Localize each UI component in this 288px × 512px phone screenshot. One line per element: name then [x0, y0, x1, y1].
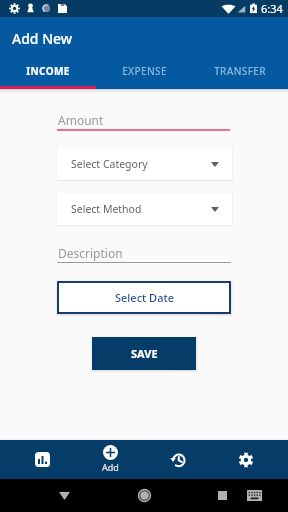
- staticText: 6:34: [261, 1, 283, 16]
- button[interactable]: Add: [76, 440, 144, 479]
- staticText: Select Date: [115, 290, 174, 305]
- button[interactable]: Select Category: [57, 148, 232, 180]
- button[interactable]: SAVE: [92, 337, 196, 370]
- button[interactable]: Settings: [212, 440, 280, 479]
- button[interactable]: INCOME: [0, 58, 96, 84]
- staticText: TRANSFER: [214, 64, 266, 78]
- staticText: Add: [102, 461, 119, 473]
- button[interactable]: TRANSFER: [192, 58, 288, 84]
- staticText: Amount: [58, 112, 104, 128]
- staticText: Description: [58, 245, 123, 261]
- button[interactable]: Keyboard: [242, 483, 267, 508]
- staticText: SAVE: [131, 346, 158, 361]
- button[interactable]: Home: [132, 483, 157, 508]
- staticText: Add New: [12, 29, 73, 48]
- staticText: Select Method: [71, 202, 142, 216]
- staticText: EXPENSE: [122, 64, 167, 78]
- button[interactable]: Select Date: [57, 281, 231, 314]
- button[interactable]: Back: [52, 483, 77, 508]
- staticText: INCOME: [26, 64, 70, 78]
- staticText: Select Category: [71, 157, 148, 171]
- button[interactable]: EXPENSE: [96, 58, 192, 84]
- button[interactable]: Statistics: [8, 440, 76, 479]
- button[interactable]: Select Method: [57, 193, 232, 225]
- button[interactable]: History: [144, 440, 212, 479]
- button[interactable]: Recent apps: [210, 483, 235, 508]
